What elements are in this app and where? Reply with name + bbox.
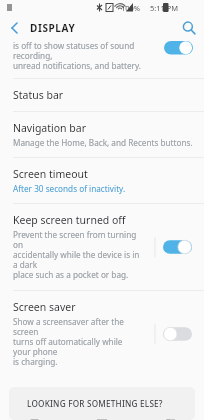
staticText: Manage the Home, Back, and Recents butto… <box>13 137 193 148</box>
staticText: Prevent the screen from turning on accid… <box>13 229 141 281</box>
staticText: LOOKING FOR SOMETHING ELSE? <box>27 398 163 409</box>
staticText: Status bar <box>13 88 64 102</box>
button[interactable]: Status bar <box>0 79 204 112</box>
staticText: After 30 seconds of inactivity. <box>13 183 126 194</box>
button[interactable]: Back <box>0 15 30 40</box>
staticText: Show a screensaver after the screen turn… <box>13 316 141 368</box>
button[interactable]: Screen saver <box>0 291 204 377</box>
staticText: Keep screen turned off <box>13 213 126 227</box>
staticText: 100% <box>121 3 141 13</box>
staticText: DISPLAY <box>30 21 76 35</box>
button[interactable]: Search <box>174 15 204 40</box>
button[interactable]: Switch off <box>163 325 192 343</box>
button[interactable]: Screen timeout <box>0 158 204 204</box>
staticText: Navigation bar <box>13 121 87 135</box>
staticText: Screen saver <box>13 300 76 314</box>
button[interactable]: Keep screen turned off <box>0 204 204 291</box>
button[interactable]: is off to show statuses of sound recordi… <box>0 40 204 79</box>
staticText: 5:11 PM <box>150 3 179 13</box>
button[interactable]: Navigation bar <box>0 112 204 158</box>
button[interactable]: Switch on <box>163 238 192 256</box>
staticText: is off to show statuses of sound recordi… <box>13 40 155 72</box>
staticText: Screen timeout <box>13 167 88 181</box>
